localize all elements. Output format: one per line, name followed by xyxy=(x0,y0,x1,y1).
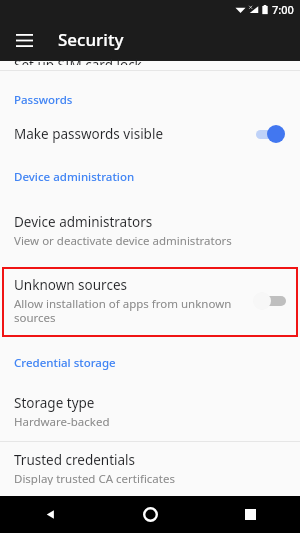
staticText: View or deactivate device administrators xyxy=(14,233,232,249)
button[interactable]: Unknown sources xyxy=(2,267,298,337)
staticText: Allow installation of apps from unknown … xyxy=(14,296,242,325)
staticText: Trusted credentials xyxy=(14,451,136,469)
staticText: 7:00 xyxy=(272,2,294,17)
staticText: Make passwords visible xyxy=(14,125,252,143)
staticText: Device administrators xyxy=(14,213,153,231)
button[interactable]: Device administrators xyxy=(0,204,300,260)
button[interactable]: Set up SIM card lock xyxy=(0,61,300,70)
button[interactable]: Back xyxy=(0,496,100,533)
staticText: Hardware-backed xyxy=(14,414,110,430)
staticText: Passwords xyxy=(14,92,73,108)
staticText: Credential storage xyxy=(14,355,116,371)
staticText: Device administration xyxy=(14,169,135,185)
button[interactable]: Trusted credentials xyxy=(0,442,300,496)
staticText: Storage type xyxy=(14,394,95,412)
button[interactable]: Recent apps xyxy=(200,496,300,533)
staticText: Display trusted CA certificates xyxy=(14,471,175,485)
button[interactable]: Open navigation drawer xyxy=(7,23,41,57)
staticText: Unknown sources xyxy=(14,276,127,294)
button[interactable]: Home xyxy=(100,496,200,533)
staticText: Security xyxy=(58,28,124,51)
staticText: Set up SIM card lock xyxy=(14,56,142,65)
button[interactable]: Make passwords visible xyxy=(0,108,300,150)
button[interactable]: Storage type xyxy=(0,385,300,441)
